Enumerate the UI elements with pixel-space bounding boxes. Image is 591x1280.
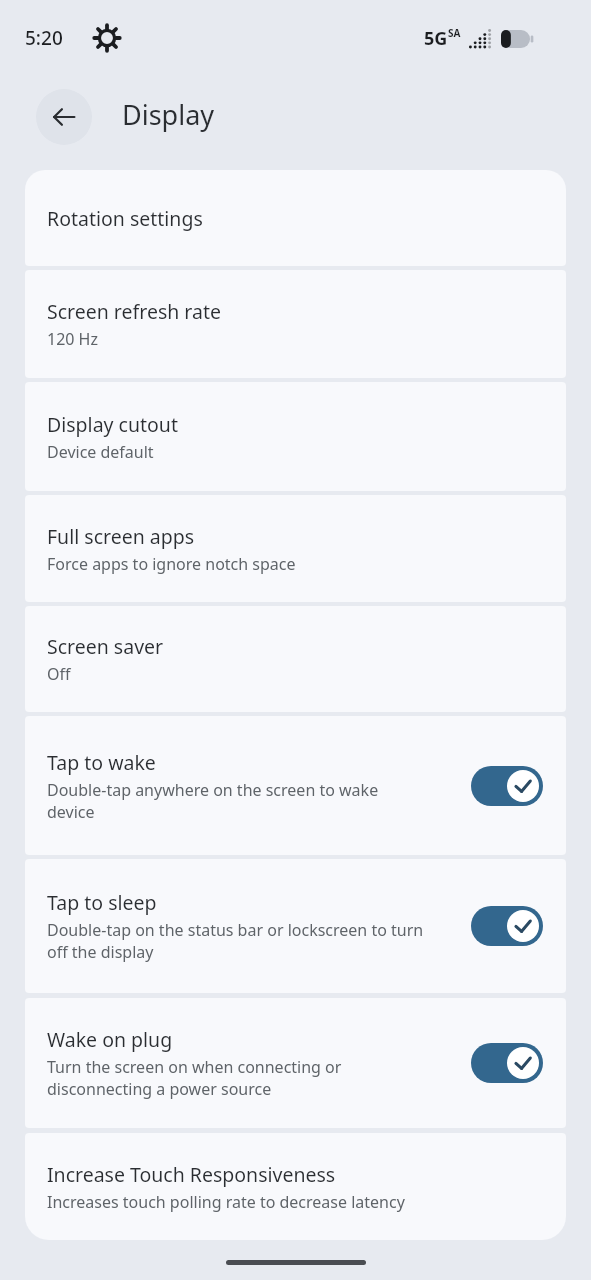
staticText: 5:20 xyxy=(25,25,63,51)
staticText: Increase Touch Responsiveness xyxy=(47,1161,336,1188)
staticText: Turn the screen on when connecting or di… xyxy=(47,1056,415,1100)
button[interactable]: Screen saver xyxy=(25,606,566,712)
staticText: Tap to sleep xyxy=(47,889,157,916)
button[interactable]: Tap to wake xyxy=(25,716,566,855)
staticText: Force apps to ignore notch space xyxy=(47,553,296,575)
button[interactable]: Rotation settings xyxy=(25,170,566,266)
staticText: Tap to wake xyxy=(47,749,156,776)
button[interactable]: Full screen apps xyxy=(25,495,566,602)
staticText: SA xyxy=(448,26,461,40)
staticText: Rotation settings xyxy=(47,205,203,232)
button[interactable]: Increase Touch Responsiveness xyxy=(25,1133,566,1240)
staticText: Screen refresh rate xyxy=(47,298,221,325)
staticText: Off xyxy=(47,663,71,685)
staticText: 120 Hz xyxy=(47,328,98,350)
button[interactable]: Display cutout xyxy=(25,382,566,491)
button[interactable]: Tap to sleep xyxy=(25,859,566,993)
staticText: 5G xyxy=(424,26,448,51)
staticText: Display cutout xyxy=(47,411,178,438)
staticText: Device default xyxy=(47,441,154,463)
button[interactable]: Toggle xyxy=(471,906,543,946)
staticText: Display xyxy=(122,96,215,133)
staticText: Double-tap on the status bar or lockscre… xyxy=(47,919,447,963)
staticText: Full screen apps xyxy=(47,523,195,550)
staticText: Double-tap anywhere on the screen to wak… xyxy=(47,779,412,823)
staticText: Increases touch polling rate to decrease… xyxy=(47,1191,405,1213)
button[interactable]: Back xyxy=(36,89,92,145)
button[interactable]: Wake on plug xyxy=(25,998,566,1128)
button[interactable]: Toggle xyxy=(471,766,543,806)
button[interactable]: Toggle xyxy=(471,1043,543,1083)
staticText: Wake on plug xyxy=(47,1026,173,1053)
staticText: Screen saver xyxy=(47,633,164,660)
button[interactable]: Screen refresh rate xyxy=(25,270,566,378)
